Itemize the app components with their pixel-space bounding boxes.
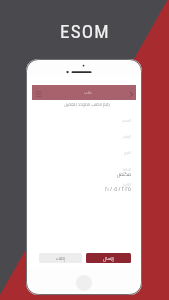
staticText: الحالة (71, 166, 131, 173)
staticText: النوع (71, 149, 131, 156)
button[interactable]: Home (76, 275, 92, 291)
button[interactable]: إلغاء (39, 253, 82, 263)
button[interactable]: إرسال (86, 253, 131, 263)
staticText: إرسال (103, 254, 114, 263)
staticText: ٢٠٢٥ / ٠٥ / ٢١ (71, 185, 131, 194)
staticText: الرقم (71, 133, 131, 140)
staticText: ESOM (60, 20, 110, 42)
staticText: التاريخ (71, 181, 131, 188)
staticText: رقم الطلب الموحد للعميل (64, 100, 110, 108)
button[interactable]: طلب (32, 85, 136, 100)
staticText: مكتمل (71, 170, 131, 179)
staticText: طلب (84, 89, 92, 97)
staticText: الاسم (71, 117, 131, 124)
staticText: إلغاء (56, 254, 65, 262)
